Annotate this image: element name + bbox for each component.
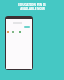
- staticText: AVAILABLE NOW: [20, 7, 45, 11]
- staticText: EDUCATION PIN IS: [18, 3, 46, 7]
